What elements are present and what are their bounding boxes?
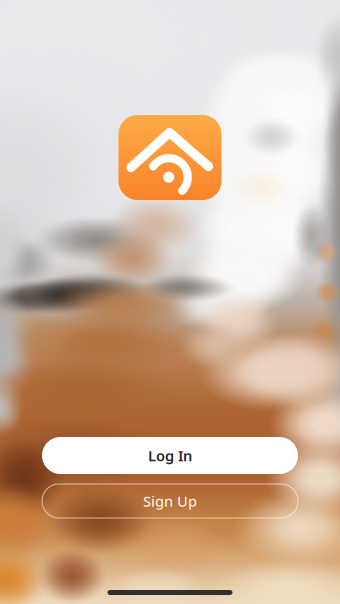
button[interactable]: Log In [42, 437, 298, 474]
staticText: Log In [148, 446, 192, 465]
button[interactable]: Sign Up [42, 484, 298, 518]
staticText: Sign Up [143, 491, 197, 511]
